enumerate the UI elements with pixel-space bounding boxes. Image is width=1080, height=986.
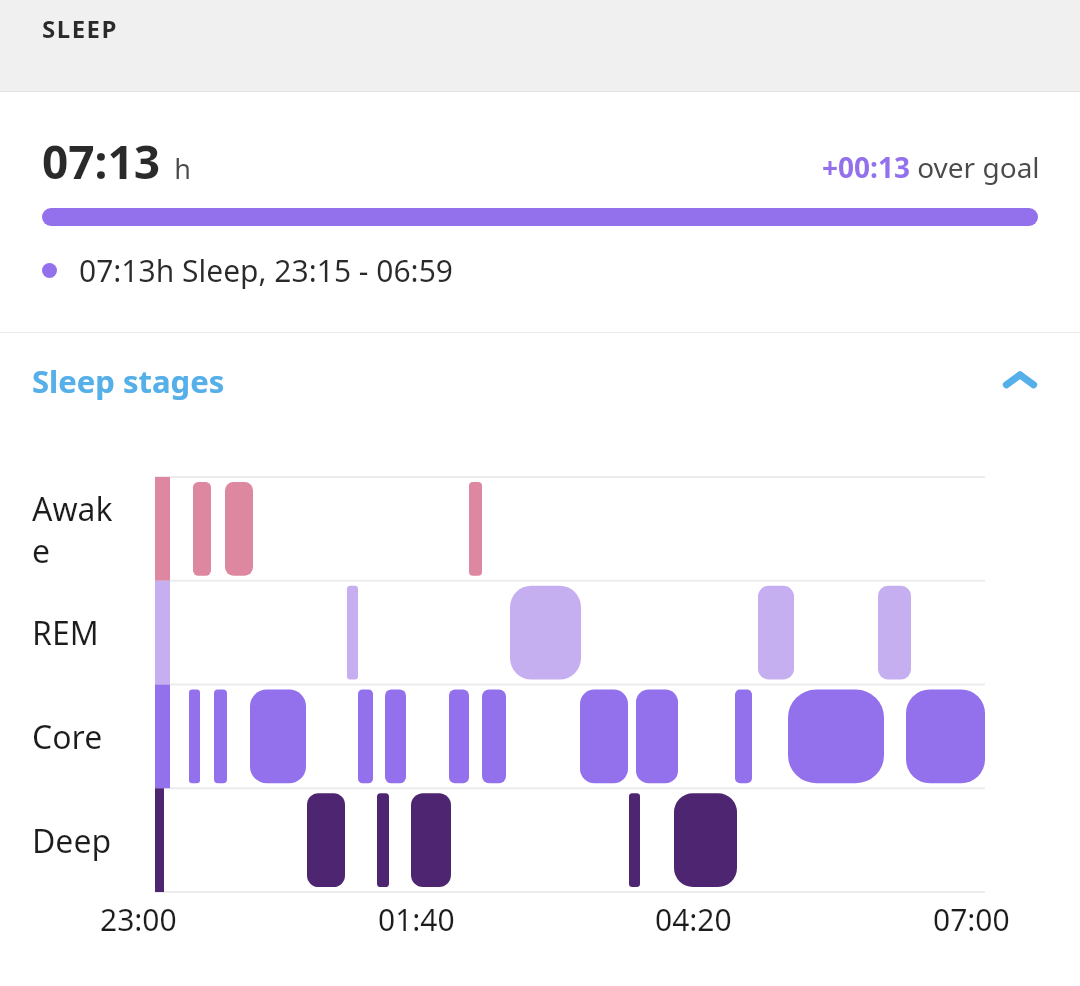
- staticText: +00:13 over goal: [822, 148, 1040, 186]
- staticText: 01:40: [378, 899, 455, 940]
- staticText: 07:13h Sleep, 23:15 - 06:59: [79, 250, 453, 291]
- staticText: Awak e: [32, 487, 113, 572]
- staticText: Sleep stages: [32, 360, 225, 402]
- staticText: 07:00: [933, 899, 1010, 940]
- staticText: 23:00: [100, 899, 177, 940]
- staticText: Deep: [32, 819, 112, 863]
- button[interactable]: Sleep stages: [0, 333, 1080, 429]
- staticText: 04:20: [655, 899, 732, 940]
- staticText: REM: [32, 611, 99, 655]
- staticText: SLEEP: [42, 12, 118, 45]
- button[interactable]: Collapse sleep stages: [996, 357, 1044, 405]
- staticText: Core: [32, 715, 103, 759]
- staticText: 07:13 h: [42, 130, 191, 193]
